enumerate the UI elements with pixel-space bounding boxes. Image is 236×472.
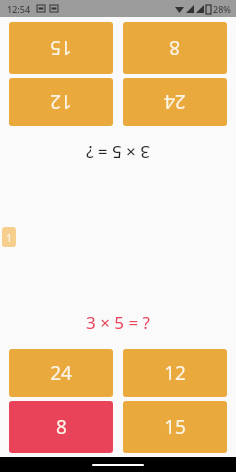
button[interactable]: 12 xyxy=(123,349,227,397)
button[interactable]: 15 xyxy=(123,401,227,453)
staticText: 8 xyxy=(56,414,67,440)
button[interactable]: 24 xyxy=(123,78,227,126)
staticText: 24 xyxy=(164,89,186,115)
button[interactable]: 8 xyxy=(123,22,227,74)
button[interactable]: 8 xyxy=(9,401,113,453)
button[interactable]: 15 xyxy=(9,22,113,74)
staticText: 12:54 xyxy=(7,3,31,15)
button[interactable]: 12 xyxy=(9,78,113,126)
staticText: 28% xyxy=(213,3,231,15)
staticText: 15 xyxy=(50,35,72,61)
staticText: 3 × 5 = ? xyxy=(86,141,150,164)
staticText: 1 xyxy=(6,230,13,245)
staticText: 8 xyxy=(169,35,180,61)
button[interactable]: Player score 1 xyxy=(2,227,16,247)
staticText: 24 xyxy=(50,360,72,386)
staticText: 3 × 5 = ? xyxy=(86,311,150,334)
staticText: 12 xyxy=(50,89,72,115)
button[interactable]: Home xyxy=(92,464,144,466)
staticText: 12 xyxy=(164,360,186,386)
button[interactable]: 24 xyxy=(9,349,113,397)
staticText: 15 xyxy=(164,414,186,440)
